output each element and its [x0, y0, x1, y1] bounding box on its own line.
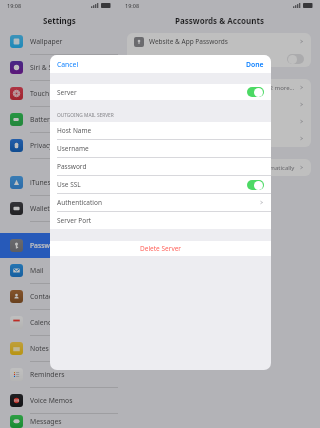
button[interactable]: Website & App Passwords	[127, 33, 311, 50]
staticText: Cancel	[57, 60, 79, 69]
button[interactable]: Delete Server	[50, 241, 271, 256]
staticText: Privacy	[30, 141, 53, 150]
other: Open	[259, 200, 264, 205]
button[interactable]: Username	[50, 140, 271, 157]
staticText: Host Name	[57, 126, 92, 135]
button[interactable]: Messages	[0, 414, 118, 428]
button[interactable]: Siri & Search	[0, 55, 118, 80]
staticText: Mail, Contacts and 2 more...	[216, 84, 295, 92]
staticText: iTunes & App	[30, 178, 72, 187]
staticText: Use SSL	[57, 180, 81, 189]
staticText: Server Port	[57, 216, 92, 225]
button[interactable]: Outlook	[127, 113, 311, 130]
other: Open	[299, 165, 304, 170]
staticText: Outlook	[134, 117, 159, 126]
staticText: 19:08	[125, 2, 140, 9]
staticText: Touch ID & P	[30, 89, 71, 98]
other: Open	[299, 39, 304, 44]
button[interactable]: AutoFill Passwords	[127, 50, 311, 67]
button[interactable]: Passwords &	[0, 233, 118, 258]
other: Open	[299, 102, 304, 107]
staticText: Website & App Passwords	[149, 37, 228, 46]
staticText: iCloud	[134, 83, 154, 92]
staticText: 19:08	[7, 2, 22, 9]
staticText: Add Account	[134, 134, 173, 143]
staticText: Username	[57, 144, 89, 153]
other: Open	[299, 85, 304, 90]
button[interactable]: Host Name	[50, 122, 271, 139]
staticText: Password	[57, 162, 87, 171]
button[interactable]: Password	[50, 158, 271, 175]
staticText: Automatically	[256, 164, 295, 172]
button[interactable]: Touch ID & P	[0, 81, 118, 106]
staticText: Settings	[43, 15, 76, 26]
button[interactable]: iTunes & App	[0, 170, 118, 195]
staticText: Server	[57, 88, 77, 97]
button[interactable]: Privacy	[0, 133, 118, 158]
button[interactable]: Toggle	[247, 87, 264, 97]
button[interactable]: Done	[239, 57, 271, 72]
staticText: AutoFill Passwords	[134, 54, 192, 63]
staticText: Reminders	[30, 370, 65, 379]
staticText: Done	[246, 60, 264, 69]
button[interactable]: Notes	[0, 336, 118, 361]
button[interactable]: Reminders	[0, 362, 118, 387]
staticText: Authentication	[57, 198, 102, 207]
button[interactable]: Battery	[0, 107, 118, 132]
staticText: Notes	[30, 344, 49, 353]
button[interactable]: Gmail	[127, 96, 311, 113]
staticText: OUTGOING MAIL SERVER	[57, 112, 114, 119]
staticText: Passwords &	[30, 241, 71, 250]
button[interactable]: Authentication	[50, 194, 271, 211]
staticText: Mail	[30, 266, 44, 275]
button[interactable]: Cancel	[50, 57, 86, 72]
staticText: Passwords & Accounts	[175, 15, 264, 26]
button[interactable]: Toggle	[287, 54, 304, 64]
button[interactable]: Use SSL	[50, 176, 271, 193]
staticText: Wallet & App	[30, 204, 72, 213]
button[interactable]: Server Port	[50, 212, 271, 229]
button[interactable]: iCloud	[127, 79, 311, 96]
button[interactable]: Fetch New Data	[127, 159, 311, 176]
button[interactable]: Add Account	[127, 130, 311, 147]
button[interactable]: Calendar	[0, 310, 118, 335]
button[interactable]: Toggle	[247, 180, 264, 190]
staticText: Delete Server	[140, 244, 182, 253]
button[interactable]: Server	[50, 84, 271, 100]
button[interactable]: Contacts	[0, 284, 118, 309]
button[interactable]: Wallpaper	[0, 29, 118, 54]
staticText: Calendar	[30, 318, 59, 327]
staticText: Voice Memos	[30, 396, 73, 405]
other: Open	[299, 119, 304, 124]
staticText: Wallpaper	[30, 37, 63, 46]
staticText: Battery	[30, 115, 54, 124]
staticText: Siri & Search	[30, 63, 71, 72]
button[interactable]: Voice Memos	[0, 388, 118, 413]
other: Open	[299, 136, 304, 141]
staticText: Messages	[30, 417, 62, 426]
staticText: Contacts	[30, 292, 58, 301]
button[interactable]: Wallet & App	[0, 196, 118, 221]
button[interactable]: Mail	[0, 258, 118, 283]
